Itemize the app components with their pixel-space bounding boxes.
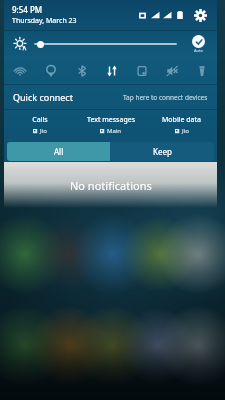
staticText: 9:54 PM: [12, 4, 43, 15]
button[interactable]: Quick connect: [4, 85, 217, 109]
button[interactable]: Mobile data: [97, 57, 127, 84]
staticText: Thursday, March 23: [12, 16, 77, 26]
staticText: Tap here to connect devices: [123, 93, 208, 102]
staticText: Text messages: [87, 115, 135, 125]
button[interactable]: Sound: [157, 57, 187, 84]
button[interactable]: [34, 37, 177, 51]
button[interactable]: Keep: [110, 142, 214, 161]
button[interactable]: Wi-Fi: [4, 57, 35, 84]
button[interactable]: Flashlight: [187, 57, 217, 84]
button[interactable]: Auto: [185, 35, 211, 53]
staticText: Jio: [182, 127, 189, 135]
button[interactable]: All: [7, 142, 110, 161]
button[interactable]: Calls: [4, 110, 75, 139]
button[interactable]: Auto rotate: [127, 57, 157, 84]
staticText: All: [54, 146, 64, 157]
staticText: Mobile data: [162, 115, 201, 125]
button[interactable]: Text messages: [75, 110, 146, 139]
staticText: Keep: [153, 146, 172, 157]
staticText: Quick connect: [13, 91, 73, 103]
button[interactable]: Settings: [191, 6, 209, 24]
button[interactable]: Location: [35, 57, 66, 84]
staticText: Auto: [194, 48, 203, 53]
staticText: Jio: [40, 127, 47, 135]
staticText: No notifications: [70, 178, 152, 193]
button[interactable]: Mobile data: [146, 110, 217, 139]
staticText: Calls: [32, 115, 48, 125]
button[interactable]: Auto brightness: [14, 38, 27, 51]
staticText: Main: [107, 127, 122, 135]
button[interactable]: Bluetooth: [66, 57, 97, 84]
